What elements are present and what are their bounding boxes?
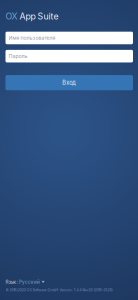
- staticText: Русский: [19, 279, 40, 285]
- button[interactable]: Язык:: [5, 279, 45, 285]
- staticText: Пароль: [8, 53, 27, 59]
- button[interactable]: Вход: [5, 75, 133, 90]
- staticText: OX: [5, 11, 17, 22]
- staticText: App Suite: [17, 11, 58, 22]
- button[interactable]: Имя пользователя: [5, 32, 133, 44]
- staticText: Язык:: [5, 279, 17, 285]
- staticText: Вход: [62, 79, 76, 86]
- button[interactable]: Пароль: [5, 50, 133, 62]
- staticText: Имя пользователя: [8, 35, 55, 41]
- staticText: © 2016-2020 OX Software GmbH Version: 7.…: [5, 288, 112, 292]
